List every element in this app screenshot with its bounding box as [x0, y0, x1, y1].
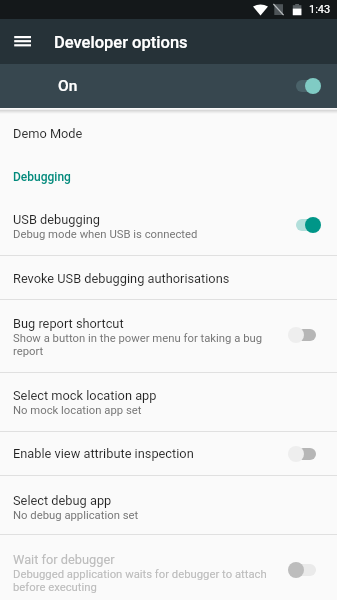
- staticText: Revoke USB debugging authorisations: [13, 271, 230, 286]
- button[interactable]: Wait for debugger: [0, 532, 337, 600]
- staticText: No debug application set: [13, 509, 139, 522]
- button[interactable]: USB debugging: [0, 194, 337, 255]
- staticText: Debugged application waits for debugger …: [13, 568, 282, 594]
- staticText: Debugging: [13, 170, 71, 184]
- staticText: Demo Mode: [13, 126, 83, 141]
- staticText: Debug mode when USB is connected: [13, 228, 198, 241]
- button[interactable]: Select mock location app: [0, 373, 337, 431]
- staticText: Bug report shortcut: [13, 316, 124, 331]
- staticText: Select debug app: [13, 493, 112, 508]
- button[interactable]: On: [0, 64, 337, 108]
- button[interactable]: Enable view attribute inspection: [0, 432, 337, 475]
- staticText: Select mock location app: [13, 388, 157, 403]
- button[interactable]: Bug report shortcut: [0, 300, 337, 372]
- staticText: 1:43: [309, 3, 331, 16]
- staticText: On: [58, 77, 78, 95]
- staticText: Wait for debugger: [13, 552, 115, 567]
- staticText: Developer options: [54, 33, 188, 52]
- button[interactable]: Open navigation menu: [8, 25, 36, 53]
- button[interactable]: Select debug app: [0, 476, 337, 534]
- staticText: USB debugging: [13, 212, 101, 227]
- button[interactable]: Revoke USB debugging authorisations: [0, 256, 337, 299]
- button[interactable]: Demo Mode: [0, 108, 337, 159]
- staticText: Show a button in the power menu for taki…: [13, 332, 282, 358]
- staticText: No mock location app set: [13, 404, 142, 417]
- staticText: Enable view attribute inspection: [13, 446, 194, 461]
